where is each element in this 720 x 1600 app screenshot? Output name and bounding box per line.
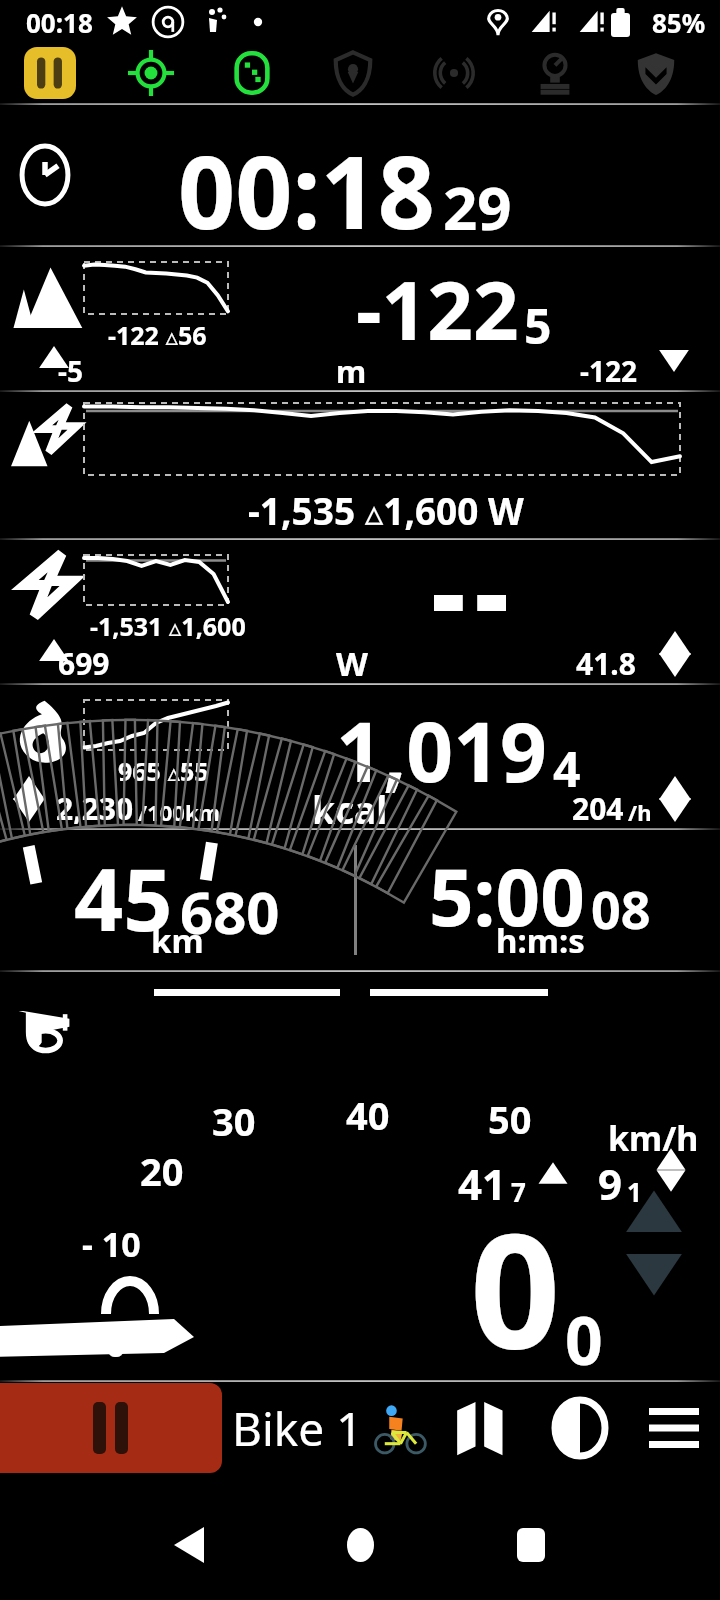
button[interactable]: 965 ▵55 <box>0 686 720 827</box>
staticText: 699 <box>58 643 110 684</box>
staticText: 45 <box>74 839 173 956</box>
staticText: 0 <box>106 1321 126 1367</box>
staticText: 85% <box>652 5 706 40</box>
staticText: W <box>336 641 368 686</box>
staticText: 0 <box>470 1179 561 1394</box>
staticText: 5 <box>524 293 552 358</box>
button[interactable]: Horn <box>0 973 720 1379</box>
staticText: 08 <box>591 873 651 944</box>
staticText: Bike 1 <box>232 1397 363 1460</box>
button[interactable]: Download <box>632 49 680 97</box>
staticText: 30 <box>212 1095 256 1147</box>
staticText: kcal <box>312 784 388 834</box>
staticText: km/h <box>608 1115 699 1161</box>
button[interactable]: Privacy <box>329 49 377 97</box>
staticText: 0 <box>565 1294 603 1384</box>
staticText: km <box>151 918 204 963</box>
staticText: 2,230 <box>56 788 134 829</box>
staticText: 00:18 <box>26 5 93 40</box>
button[interactable]: -1,531 ▵1,600 <box>0 541 720 682</box>
button[interactable]: Map <box>436 1383 528 1473</box>
button[interactable]: 45 <box>0 831 354 969</box>
button[interactable]: Bike 1 <box>226 1383 430 1473</box>
button[interactable]: Menu <box>628 1383 720 1473</box>
staticText: 20 <box>140 1145 184 1197</box>
button[interactable]: Back <box>153 1509 225 1581</box>
staticText: 00:18 <box>178 122 435 258</box>
staticText: /h <box>628 797 652 827</box>
staticText: 7 <box>511 1174 526 1209</box>
staticText: m <box>336 350 367 392</box>
button[interactable]: Recents <box>495 1509 567 1581</box>
button[interactable]: Brightness <box>534 1383 626 1473</box>
button[interactable]: Speed sensor <box>531 49 579 97</box>
staticText: -122 <box>580 352 638 390</box>
button[interactable]: 00:18 <box>0 106 720 244</box>
button[interactable]: -122 ▵56 <box>0 248 720 389</box>
button[interactable]: Horn <box>10 999 76 1065</box>
staticText: 5:00 <box>429 843 585 949</box>
button[interactable]: Home <box>324 1509 396 1581</box>
button[interactable]: Sensors <box>228 49 276 97</box>
staticText: 9 <box>598 1155 623 1212</box>
button[interactable]: -1,535 ▵1,600 W <box>0 393 720 537</box>
button[interactable]: Broadcast <box>430 49 478 97</box>
staticText: 965 ▵55 <box>118 754 209 788</box>
staticText: -122 <box>356 254 519 363</box>
staticText: -122 ▵56 <box>108 318 207 352</box>
staticText: /100km <box>138 797 220 827</box>
button[interactable]: Pause <box>0 1383 222 1473</box>
staticText: 50 <box>488 1093 532 1145</box>
button[interactable]: 5:00 <box>360 831 720 969</box>
staticText: 40 <box>346 1089 390 1141</box>
staticText: - 10 <box>82 1221 141 1267</box>
button[interactable]: Recording paused <box>24 47 76 99</box>
staticText: 204 <box>572 788 624 829</box>
staticText: 680 <box>180 872 280 951</box>
staticText: 1 <box>627 1174 642 1209</box>
staticText: -1,531 ▵1,600 <box>90 609 246 643</box>
staticText: 4 <box>553 736 581 801</box>
staticText: -1,535 ▵1,600 W <box>248 485 524 535</box>
staticText: 1,019 <box>336 694 547 806</box>
button[interactable]: GPS <box>127 49 175 97</box>
staticText: h:m:s <box>496 918 585 963</box>
staticText: 29 <box>443 166 512 248</box>
staticText: 41.8 <box>576 643 636 684</box>
staticText: -5 <box>58 352 83 390</box>
staticText: 41 <box>458 1155 507 1212</box>
